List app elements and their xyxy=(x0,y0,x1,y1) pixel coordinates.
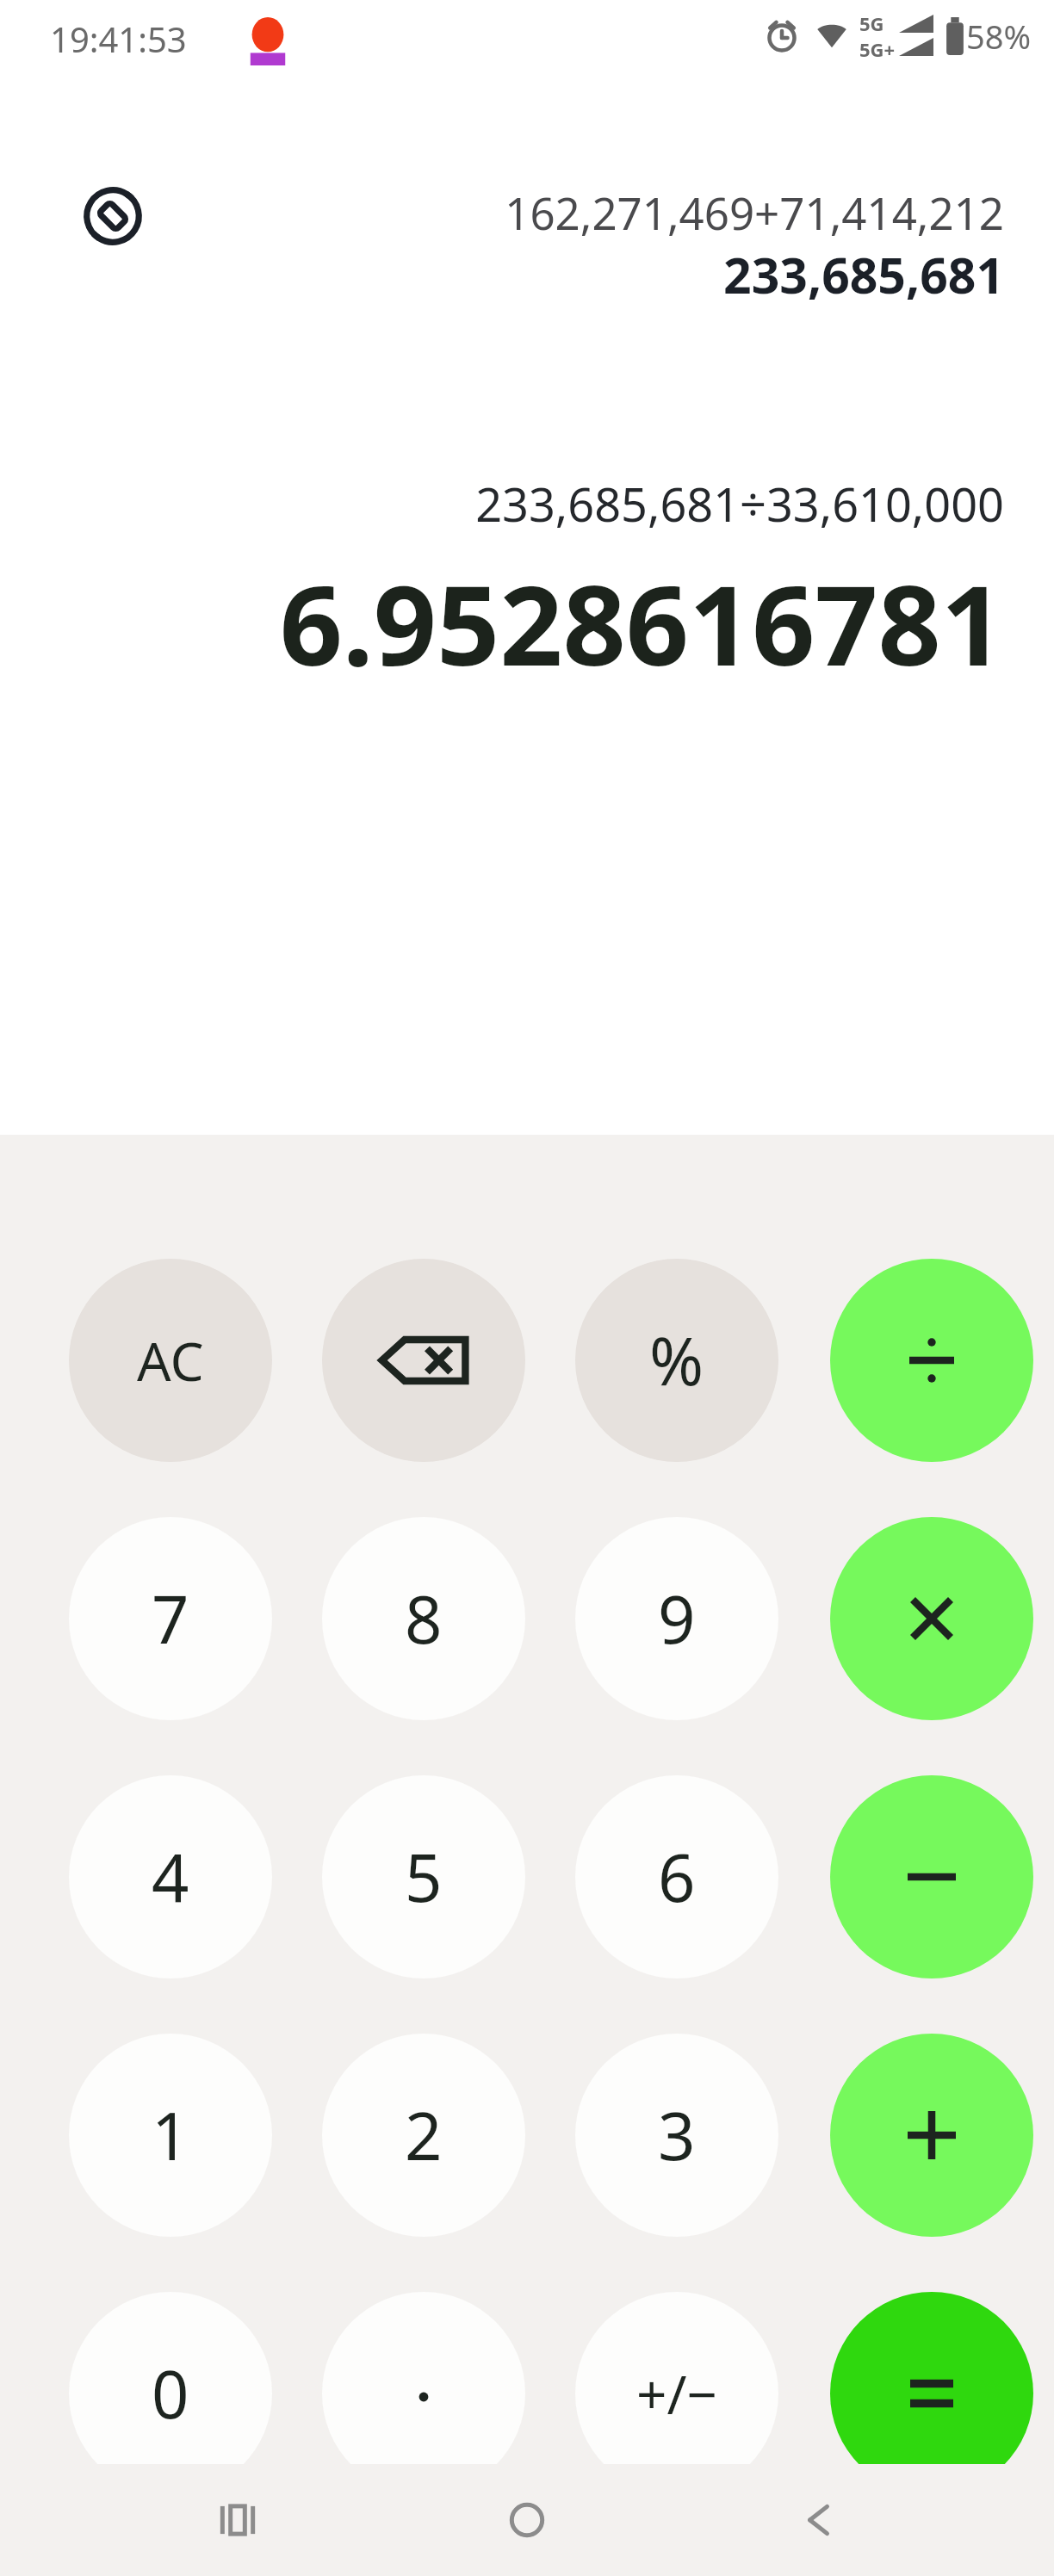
button[interactable]: Back xyxy=(765,2468,868,2572)
staticText: 162,271,469+71,414,212 xyxy=(505,183,1004,242)
staticText: 5 xyxy=(405,1832,443,1922)
staticText: 58% xyxy=(966,14,1032,59)
staticText: 6 xyxy=(658,1832,696,1922)
staticText: 4 xyxy=(152,1832,189,1922)
button[interactable]: +/− xyxy=(575,2292,778,2495)
staticText: AC xyxy=(137,1324,204,1396)
staticText: 9 xyxy=(658,1574,696,1663)
staticText: 5G+ xyxy=(859,36,896,62)
button[interactable]: Backspace xyxy=(322,1259,525,1462)
staticText: 8 xyxy=(405,1574,443,1663)
button[interactable] xyxy=(322,2292,525,2495)
button[interactable]: 8 xyxy=(322,1517,525,1720)
staticText: 233,685,681 xyxy=(723,241,1004,308)
button[interactable]: % xyxy=(575,1259,778,1462)
button[interactable]: 4 xyxy=(69,1775,272,1978)
staticText: 7 xyxy=(152,1574,189,1663)
button[interactable] xyxy=(830,1517,1033,1720)
button[interactable]: 6 xyxy=(575,1775,778,1978)
staticText: +/− xyxy=(636,2357,717,2430)
button[interactable]: Unit converter xyxy=(76,179,150,253)
staticText: 1 xyxy=(152,2090,189,2180)
button[interactable]: 1 xyxy=(69,2034,272,2237)
button[interactable]: 9 xyxy=(575,1517,778,1720)
button[interactable] xyxy=(830,1259,1033,1462)
staticText: 19:41:53 xyxy=(50,15,187,62)
staticText: 2 xyxy=(405,2090,443,2180)
staticText: % xyxy=(649,1316,704,1405)
staticText: 233,685,681÷33,610,000 xyxy=(475,472,1004,536)
button[interactable]: 3 xyxy=(575,2034,778,2237)
button[interactable]: 2 xyxy=(322,2034,525,2237)
staticText: 3 xyxy=(658,2090,696,2180)
button[interactable]: AC xyxy=(69,1259,272,1462)
button[interactable]: 0 xyxy=(69,2292,272,2495)
button[interactable] xyxy=(830,2034,1033,2237)
button[interactable]: Home xyxy=(475,2468,579,2572)
button[interactable] xyxy=(830,2292,1033,2495)
staticText: 5G xyxy=(859,10,884,36)
button[interactable]: Recents xyxy=(186,2468,289,2572)
button[interactable]: 7 xyxy=(69,1517,272,1720)
staticText: 6.9528616781 xyxy=(279,548,1004,697)
staticText: 0 xyxy=(152,2349,189,2438)
button[interactable] xyxy=(830,1775,1033,1978)
button[interactable]: 5 xyxy=(322,1775,525,1978)
